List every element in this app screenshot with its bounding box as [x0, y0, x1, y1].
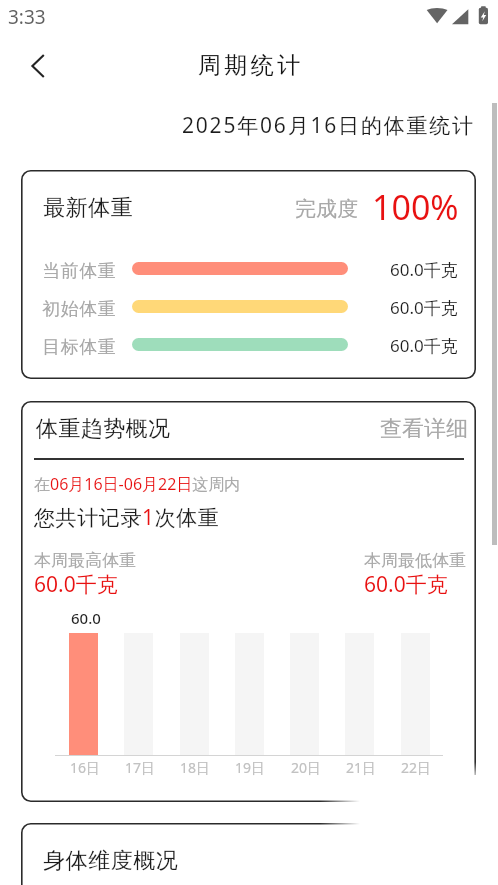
button[interactable]: Back	[15, 44, 59, 88]
staticText: 60.0千克	[390, 258, 458, 281]
staticText: 目标体重	[42, 336, 116, 359]
staticText: 本周最低体重	[364, 550, 466, 571]
staticText: 最新体重	[43, 194, 133, 222]
staticText: 18日	[180, 758, 211, 777]
staticText: 100%	[372, 184, 459, 230]
staticText: 2025年06月16日的体重统计	[182, 111, 475, 140]
staticText: 当前体重	[42, 260, 116, 283]
staticText: 60.0千克	[390, 334, 458, 357]
staticText: 60.0	[71, 608, 101, 628]
staticText: 19日	[235, 758, 266, 777]
staticText: 22日	[401, 758, 432, 777]
staticText: 60.0千克	[364, 570, 448, 599]
staticText: 周期统计	[198, 51, 304, 80]
staticText: 本周最高体重	[34, 550, 136, 571]
staticText: 体重趋势概况	[36, 415, 171, 443]
staticText: 完成度	[295, 196, 358, 222]
staticText: 初始体重	[42, 298, 116, 321]
staticText: 您共计记录1次体重	[34, 503, 220, 532]
staticText: 查看详细	[380, 415, 468, 443]
staticText: 60.0千克	[390, 296, 458, 319]
staticText: 3:33	[8, 4, 46, 30]
staticText: 身体维度概况	[43, 847, 178, 875]
staticText: 21日	[346, 758, 377, 777]
staticText: 17日	[125, 758, 156, 777]
staticText: 20日	[291, 758, 322, 777]
staticText: 60.0千克	[34, 570, 118, 599]
staticText: 在06月16日-06月22日这周内	[34, 473, 241, 495]
staticText: 16日	[70, 758, 101, 777]
